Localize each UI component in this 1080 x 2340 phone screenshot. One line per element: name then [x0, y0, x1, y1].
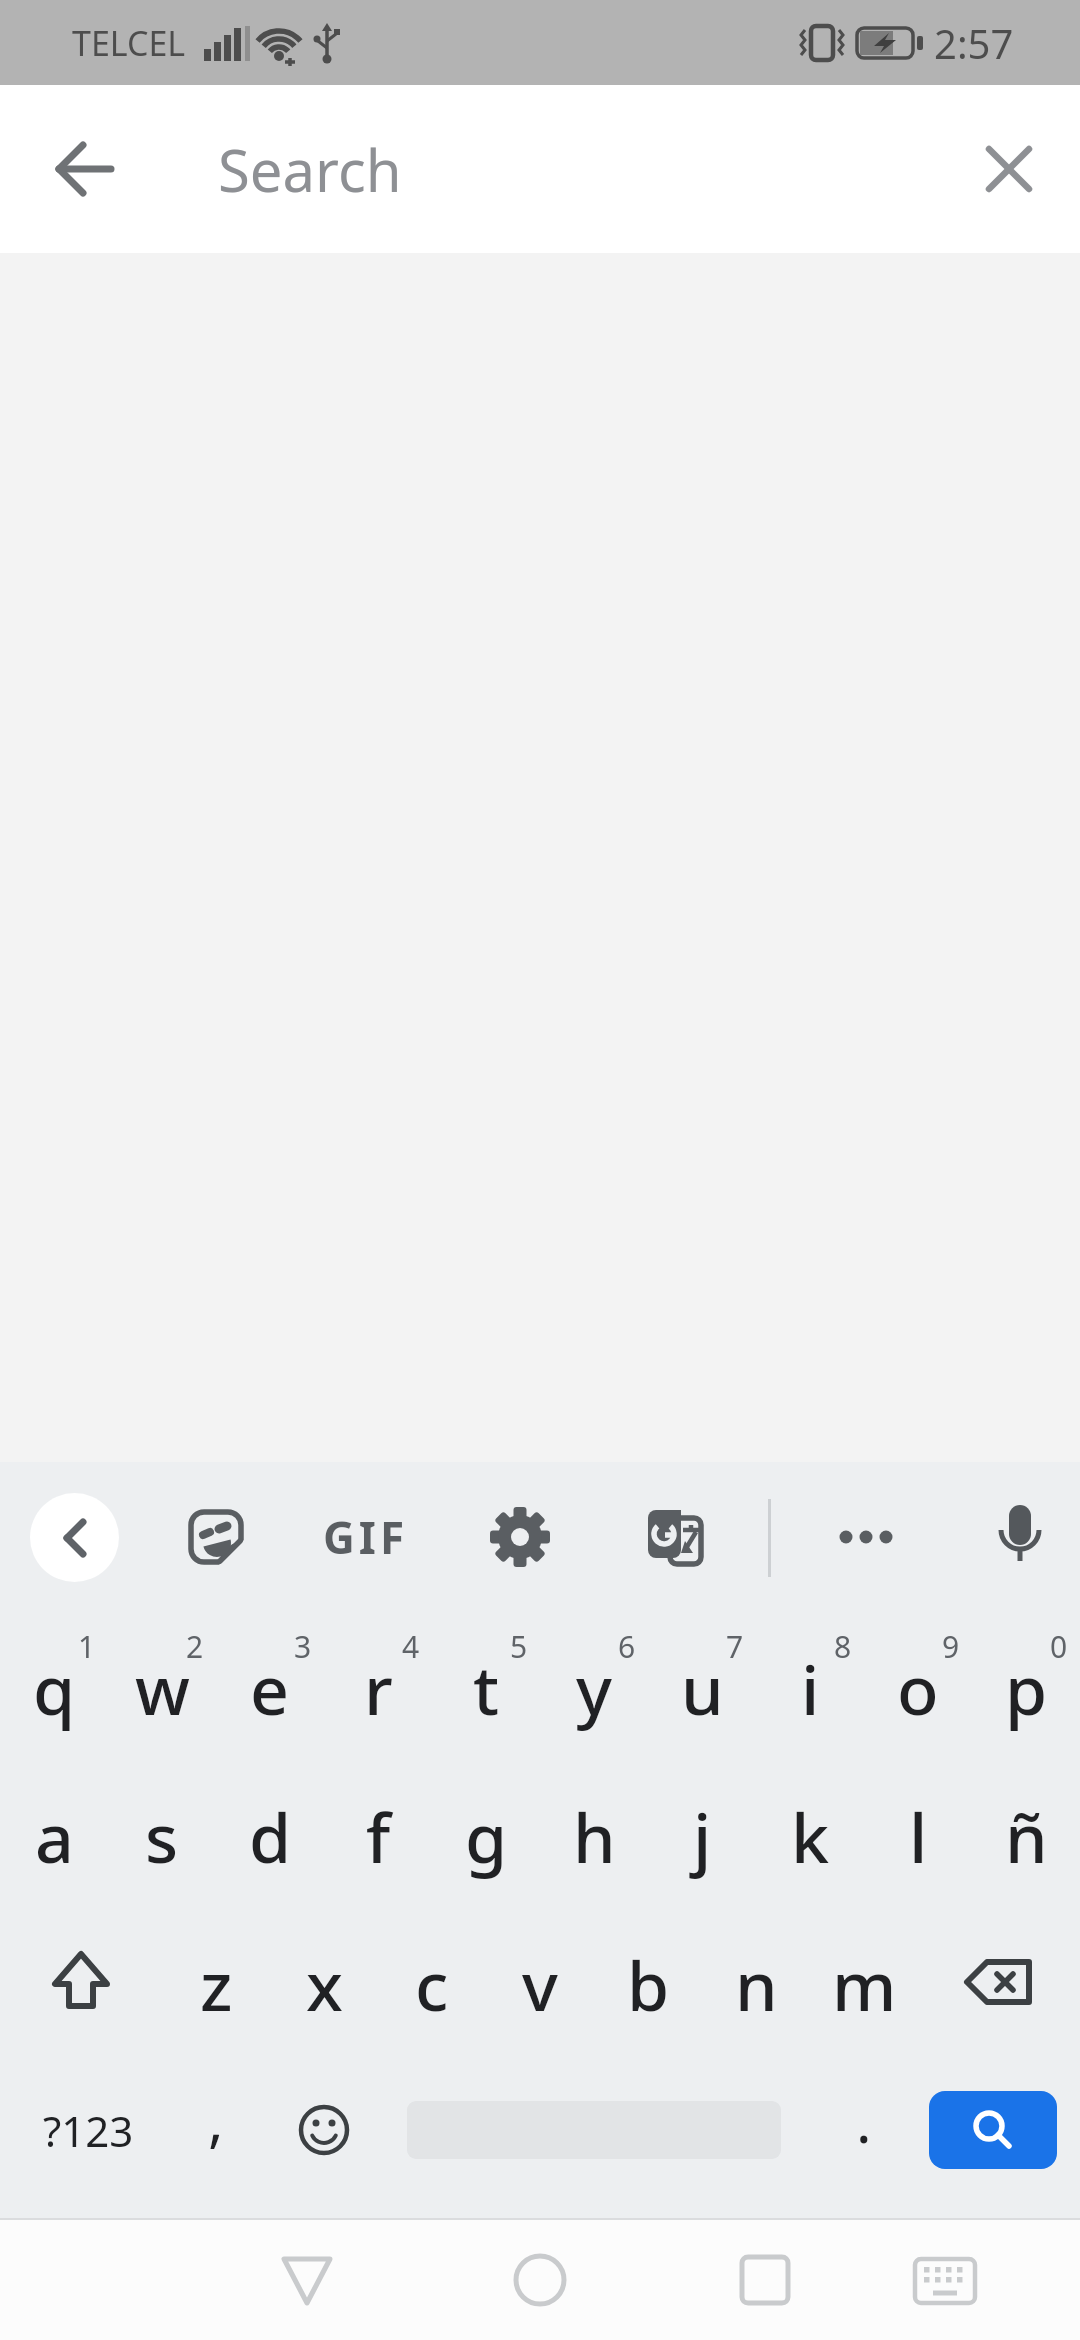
staticText: . — [856, 2081, 872, 2160]
button[interactable] — [890, 2225, 1000, 2335]
staticText: a — [35, 1790, 74, 1883]
staticText: Search — [218, 130, 402, 209]
staticText: TELCEL — [72, 20, 186, 66]
button[interactable]: b — [594, 1908, 702, 2056]
button[interactable]: v — [486, 1908, 594, 2056]
staticText: b — [627, 1938, 670, 2031]
staticText: o — [897, 1642, 939, 1735]
staticText: u — [681, 1642, 724, 1735]
staticText: m — [832, 1938, 897, 2031]
button[interactable] — [252, 2225, 362, 2335]
button[interactable]: e — [216, 1612, 324, 1760]
button[interactable]: , — [162, 2056, 270, 2204]
staticText: 0 — [1050, 1626, 1068, 1667]
staticText: 9 — [942, 1626, 960, 1667]
staticText: 1 — [78, 1626, 96, 1667]
staticText: 4 — [402, 1626, 420, 1667]
button[interactable]: j — [648, 1760, 756, 1908]
staticText: f — [366, 1790, 391, 1883]
staticText: ?123 — [43, 2102, 134, 2159]
staticText: e — [250, 1642, 290, 1735]
staticText: l — [909, 1790, 928, 1883]
staticText: 8 — [834, 1626, 852, 1667]
button[interactable] — [378, 2056, 810, 2204]
button[interactable] — [918, 1908, 1080, 2056]
button[interactable]: g — [432, 1760, 540, 1908]
staticText: w — [135, 1642, 190, 1735]
button[interactable] — [954, 114, 1064, 224]
staticText: s — [145, 1790, 179, 1883]
staticText: 2:57 — [934, 16, 1014, 70]
staticText: 2 — [186, 1626, 204, 1667]
button[interactable]: a — [0, 1760, 108, 1908]
button[interactable]: r — [324, 1612, 432, 1760]
staticText: g — [465, 1790, 508, 1883]
button[interactable]: o — [864, 1612, 972, 1760]
button[interactable]: c — [378, 1908, 486, 2056]
staticText: ñ — [1005, 1790, 1048, 1883]
button[interactable]: u — [648, 1612, 756, 1760]
button[interactable] — [627, 1492, 723, 1582]
staticText: 3 — [294, 1626, 312, 1667]
button[interactable]: s — [108, 1760, 216, 1908]
staticText: 6 — [618, 1626, 636, 1667]
staticText: 7 — [726, 1626, 744, 1667]
button[interactable]: w — [108, 1612, 216, 1760]
button[interactable] — [472, 1492, 568, 1582]
button[interactable]: d — [216, 1760, 324, 1908]
button[interactable]: ñ — [972, 1760, 1080, 1908]
staticText: v — [522, 1938, 558, 2031]
staticText: GIF — [323, 1507, 409, 1567]
staticText: x — [306, 1938, 343, 2031]
button[interactable] — [818, 1492, 914, 1582]
button[interactable] — [0, 1908, 162, 2056]
button[interactable]: l — [864, 1760, 972, 1908]
staticText: 5 — [510, 1626, 528, 1667]
staticText: d — [249, 1790, 292, 1883]
button[interactable]: k — [756, 1760, 864, 1908]
button[interactable] — [30, 1493, 119, 1582]
button[interactable]: h — [540, 1760, 648, 1908]
staticText: i — [801, 1642, 820, 1735]
staticText: t — [473, 1642, 500, 1735]
button[interactable] — [168, 1492, 264, 1582]
staticText: , — [208, 2079, 224, 2158]
staticText: c — [415, 1938, 449, 2031]
button[interactable]: m — [810, 1908, 918, 2056]
button[interactable]: x — [270, 1908, 378, 2056]
button[interactable]: ?123 — [0, 2056, 162, 2204]
staticText: z — [200, 1938, 233, 2031]
button[interactable]: q — [0, 1612, 108, 1760]
button[interactable] — [710, 2225, 820, 2335]
button[interactable]: GIF — [318, 1492, 414, 1582]
button[interactable]: f — [324, 1760, 432, 1908]
button[interactable]: i — [756, 1612, 864, 1760]
staticText: k — [791, 1790, 830, 1883]
button[interactable]: t — [432, 1612, 540, 1760]
staticText: y — [576, 1642, 612, 1735]
staticText: p — [1005, 1642, 1048, 1735]
button[interactable] — [30, 114, 140, 224]
staticText: r — [364, 1642, 393, 1735]
button[interactable] — [270, 2056, 378, 2204]
button[interactable]: z — [162, 1908, 270, 2056]
staticText: h — [573, 1790, 616, 1883]
button[interactable] — [972, 1492, 1068, 1582]
button[interactable]: p — [972, 1612, 1080, 1760]
button[interactable]: . — [810, 2056, 918, 2204]
staticText: q — [33, 1642, 76, 1735]
button[interactable]: n — [702, 1908, 810, 2056]
button[interactable] — [929, 2091, 1057, 2169]
button[interactable] — [485, 2225, 595, 2335]
button[interactable]: y — [540, 1612, 648, 1760]
staticText: n — [735, 1938, 778, 2031]
staticText: j — [693, 1790, 712, 1883]
